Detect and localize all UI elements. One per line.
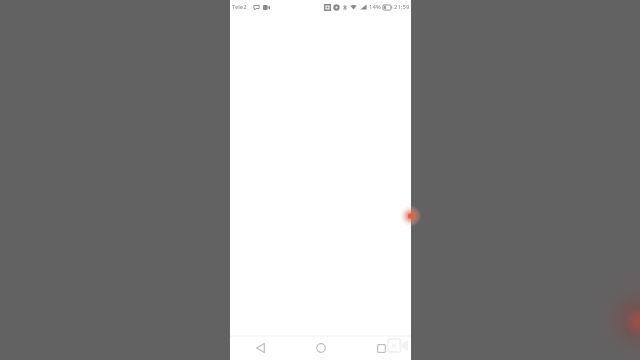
- button[interactable]: Back: [230, 336, 291, 360]
- staticText: Tele2: [232, 3, 247, 11]
- button[interactable]: Recent apps: [351, 336, 411, 360]
- staticText: 14%: [369, 3, 381, 11]
- button[interactable]: Home: [291, 336, 351, 360]
- staticText: 21:59: [394, 3, 410, 11]
